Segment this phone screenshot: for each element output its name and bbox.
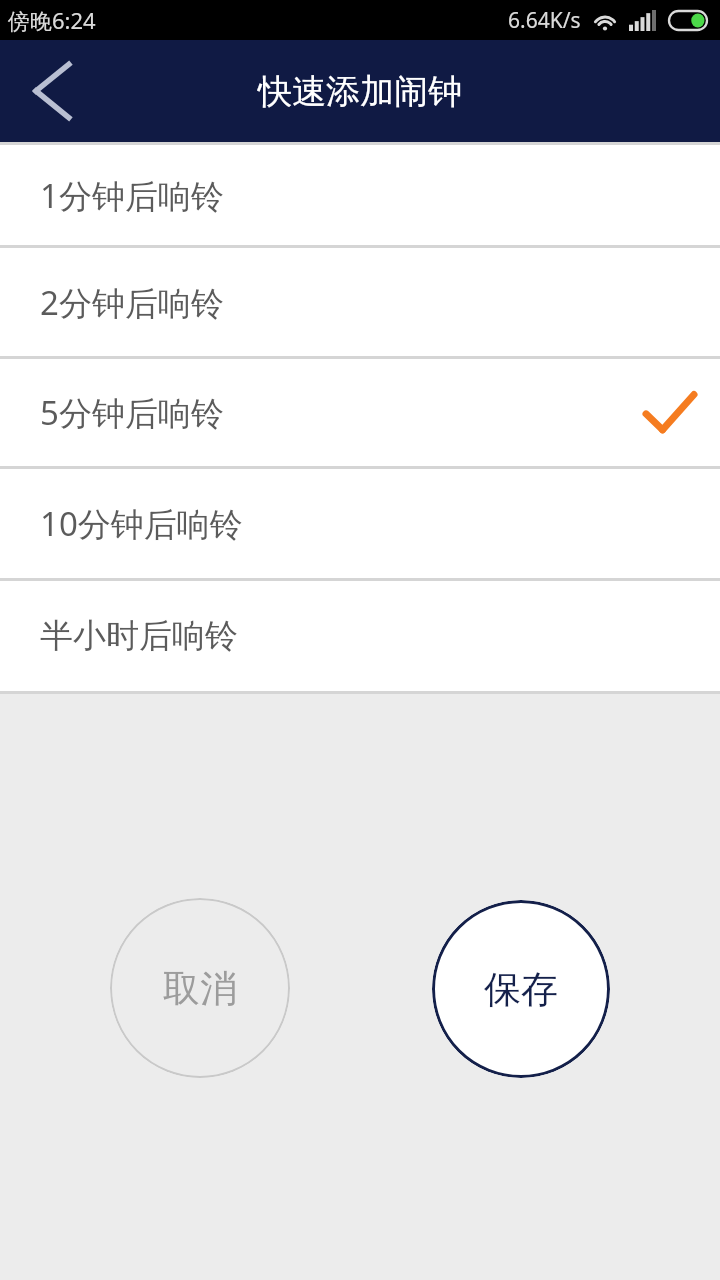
staticText: 5分钟后响铃 bbox=[40, 390, 224, 435]
button[interactable]: Back bbox=[0, 40, 104, 142]
staticText: 6.64K/s bbox=[508, 6, 581, 35]
staticText: 保存 bbox=[484, 966, 558, 1013]
button[interactable]: 2分钟后响铃 bbox=[0, 248, 720, 356]
staticText: 半小时后响铃 bbox=[40, 615, 238, 657]
staticText: 取消 bbox=[163, 965, 237, 1012]
staticText: 快速添加闹钟 bbox=[258, 70, 462, 113]
button[interactable]: 半小时后响铃 bbox=[0, 581, 720, 691]
button[interactable]: 5分钟后响铃 bbox=[0, 359, 720, 466]
button[interactable]: 保存 bbox=[432, 900, 610, 1078]
staticText: 2分钟后响铃 bbox=[40, 280, 224, 325]
button[interactable]: 10分钟后响铃 bbox=[0, 469, 720, 578]
button[interactable]: 取消 bbox=[110, 898, 290, 1078]
button[interactable]: 1分钟后响铃 bbox=[0, 145, 720, 245]
staticText: 10分钟后响铃 bbox=[40, 501, 243, 546]
staticText: 1分钟后响铃 bbox=[40, 173, 224, 218]
staticText: 傍晚6:24 bbox=[8, 5, 96, 35]
